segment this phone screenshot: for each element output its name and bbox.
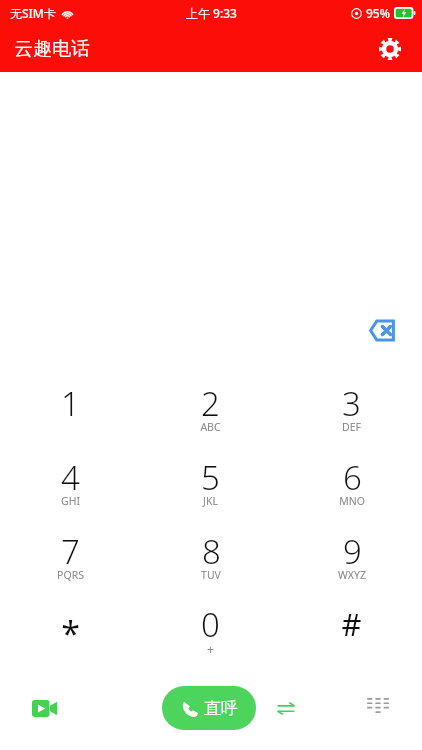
staticText: JKL xyxy=(203,494,218,508)
button[interactable]: 直呼 xyxy=(162,686,256,730)
staticText: # xyxy=(341,603,362,639)
staticText: MNO xyxy=(339,494,365,508)
staticText: 2 xyxy=(201,381,220,417)
button[interactable]: 5 xyxy=(140,444,281,518)
staticText: DEF xyxy=(342,420,361,434)
staticText: 0 xyxy=(201,602,220,638)
button[interactable]: 3 xyxy=(281,370,422,444)
staticText: TUV xyxy=(201,568,221,582)
staticText: 4 xyxy=(61,455,80,491)
staticText: 无SIM卡 xyxy=(10,5,56,21)
staticText: 直呼 xyxy=(204,698,238,719)
staticText: 1 xyxy=(61,381,80,417)
button[interactable]: Settings xyxy=(370,29,410,69)
staticText: 5 xyxy=(201,455,220,491)
button[interactable]: Switch line xyxy=(264,686,308,730)
staticText: PQRS xyxy=(57,568,84,582)
staticText: + xyxy=(207,641,214,657)
staticText: 9 xyxy=(343,529,362,565)
staticText: WXYZ xyxy=(338,568,366,582)
button[interactable]: 8 xyxy=(140,518,281,592)
staticText: 上午 9:33 xyxy=(186,5,237,21)
staticText: 6 xyxy=(343,455,362,491)
staticText: ABC xyxy=(200,420,221,434)
button[interactable]: * xyxy=(0,592,140,666)
staticText: 7 xyxy=(61,529,80,565)
staticText: GHI xyxy=(61,494,80,508)
button[interactable]: 7 xyxy=(0,518,140,592)
staticText: 95% xyxy=(366,5,390,21)
button[interactable]: Backspace xyxy=(360,308,404,352)
button[interactable]: Video call xyxy=(22,686,66,730)
button[interactable]: Dialpad xyxy=(356,686,400,730)
button[interactable]: 0 xyxy=(140,592,281,666)
staticText: 云趣电话 xyxy=(14,37,90,61)
button[interactable]: 9 xyxy=(281,518,422,592)
button[interactable]: # xyxy=(281,592,422,666)
staticText: 8 xyxy=(202,529,221,565)
button[interactable]: 1 xyxy=(0,370,140,444)
button[interactable]: 4 xyxy=(0,444,140,518)
staticText: 3 xyxy=(342,381,361,417)
staticText: * xyxy=(61,610,80,646)
button[interactable]: 6 xyxy=(281,444,422,518)
button[interactable]: 2 xyxy=(140,370,281,444)
